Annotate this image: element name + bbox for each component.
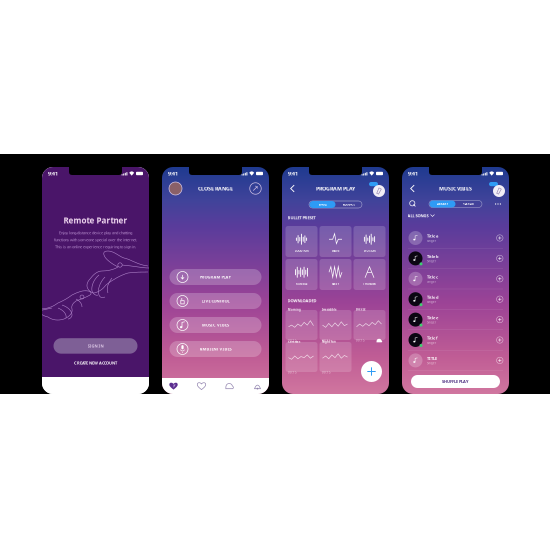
staticText: LIBRARY: [436, 202, 448, 206]
staticText: Singer: [427, 239, 436, 243]
button[interactable]: Cloud: [219, 378, 239, 393]
staticText: Title c: [427, 274, 438, 279]
staticText: Singer: [427, 321, 436, 324]
button[interactable]: Alerts: [247, 378, 267, 393]
button[interactable]: GOOD FUN: [285, 226, 317, 257]
button[interactable]: CREATE NEW ACCOUNT: [68, 359, 123, 367]
staticText: Title f: [427, 335, 438, 341]
staticText: functions with someone special over the …: [54, 237, 137, 242]
staticText: CLOSE RANGE: [198, 185, 233, 192]
button[interactable]: LIVE CONTROL: [169, 293, 261, 309]
staticText: Title b: [427, 254, 439, 259]
staticText: WAVE: [332, 249, 339, 253]
staticText: RUMBLE: [296, 282, 307, 286]
staticText: Singer: [427, 280, 436, 283]
button[interactable]: WAVE: [319, 226, 351, 257]
button[interactable]: Breeze: [353, 310, 385, 340]
button[interactable]: MOTION: [353, 226, 385, 257]
button[interactable]: Search: [408, 199, 418, 209]
staticText: SIGN IN: [87, 343, 103, 349]
staticText: LIVE CONTROL: [201, 298, 229, 304]
staticText: MOTION: [363, 249, 375, 253]
staticText: 9:41: [288, 170, 298, 177]
button[interactable]: SIGN IN: [53, 338, 137, 354]
staticText: Singer: [427, 300, 436, 304]
staticText: Singer: [427, 341, 436, 345]
button[interactable]: Back: [287, 181, 298, 195]
staticText: Caresses: [288, 340, 300, 344]
staticText: SHUFFLE PLAY: [442, 379, 469, 384]
staticText: GOOD FUN: [294, 249, 308, 253]
staticText: BULLET PRESET: [287, 215, 315, 220]
button[interactable]: PROGRAM PLAY: [169, 269, 261, 285]
staticText: Singer: [427, 259, 436, 263]
staticText: MUSIC VIBES: [439, 185, 472, 192]
button[interactable]: AMBIENT VIBES: [169, 341, 261, 357]
button[interactable]: Back: [407, 181, 418, 195]
staticText: 00:15: [288, 371, 297, 374]
button[interactable]: Profile: [488, 181, 504, 196]
staticText: 9:41: [48, 170, 58, 177]
staticText: WAVY: [331, 282, 339, 286]
button[interactable]: THUNDER: [353, 259, 385, 290]
button[interactable]: Profile: [368, 181, 384, 196]
staticText: Remote Partner: [63, 215, 127, 226]
staticText: DOWNLOADED: [287, 298, 316, 303]
staticText: 00:15: [288, 339, 297, 342]
button[interactable]: Title e: [402, 310, 509, 330]
staticText: Title a: [427, 233, 438, 239]
button[interactable]: Add: [361, 361, 382, 382]
button[interactable]: Partner: [191, 378, 211, 393]
staticText: 9:41: [168, 170, 178, 177]
staticText: 00:15: [322, 371, 331, 374]
button[interactable]: Connect: [248, 181, 263, 196]
staticText: SINGLE: [318, 203, 326, 206]
staticText: 9:41: [408, 170, 418, 177]
staticText: Irresistible: [322, 308, 337, 312]
button[interactable]: SEQUENCE: [335, 201, 361, 208]
staticText: Enjoy long-distance device play and chat…: [59, 230, 132, 235]
button[interactable]: Irresistible: [319, 310, 351, 340]
button[interactable]: WAVY: [319, 259, 351, 290]
staticText: 00:15: [356, 339, 365, 342]
button[interactable]: LIBRARY: [429, 200, 455, 207]
button[interactable]: Night Fun: [319, 342, 351, 372]
button[interactable]: Morning: [285, 310, 317, 340]
button[interactable]: Title a: [402, 228, 509, 248]
staticText: Breeze: [356, 308, 366, 311]
staticText: TITLE: [427, 356, 437, 361]
staticText: Title d: [427, 295, 439, 300]
staticText: PROGRAM PLAY: [199, 274, 231, 280]
button[interactable]: Title f: [402, 330, 509, 350]
staticText: PROGRAM PLAY: [316, 185, 355, 192]
button[interactable]: Caresses: [285, 342, 317, 372]
staticText: CREATE NEW ACCOUNT: [74, 360, 117, 365]
staticText: 00:15: [322, 339, 331, 342]
staticText: Morning: [288, 308, 301, 312]
staticText: AMBIENT VIBES: [199, 346, 231, 352]
staticText: PLAYLIST: [462, 202, 474, 206]
staticText: Singer: [427, 361, 436, 365]
button[interactable]: PLAYLIST: [455, 200, 481, 207]
staticText: This is an online experience requiring t…: [55, 244, 136, 249]
staticText: MUSIC VIBES: [202, 322, 229, 328]
button[interactable]: More: [493, 199, 503, 209]
staticText: Title e: [427, 315, 438, 320]
staticText: ALL SONGS: [407, 213, 428, 218]
staticText: SEQUENCE: [342, 203, 354, 206]
button[interactable]: TITLE: [402, 350, 509, 371]
button[interactable]: Title b: [402, 248, 509, 269]
button[interactable]: MUSIC VIBES: [169, 317, 261, 333]
button[interactable]: Favorites: [163, 378, 183, 393]
button[interactable]: SINGLE: [309, 201, 335, 208]
button[interactable]: Title d: [402, 289, 509, 310]
button[interactable]: SHUFFLE PLAY: [411, 375, 500, 388]
button[interactable]: Title c: [402, 269, 509, 289]
staticText: THUNDER: [363, 282, 376, 286]
button[interactable]: Profile: [168, 181, 183, 196]
staticText: Night Fun: [322, 340, 336, 344]
button[interactable]: RUMBLE: [285, 259, 317, 290]
